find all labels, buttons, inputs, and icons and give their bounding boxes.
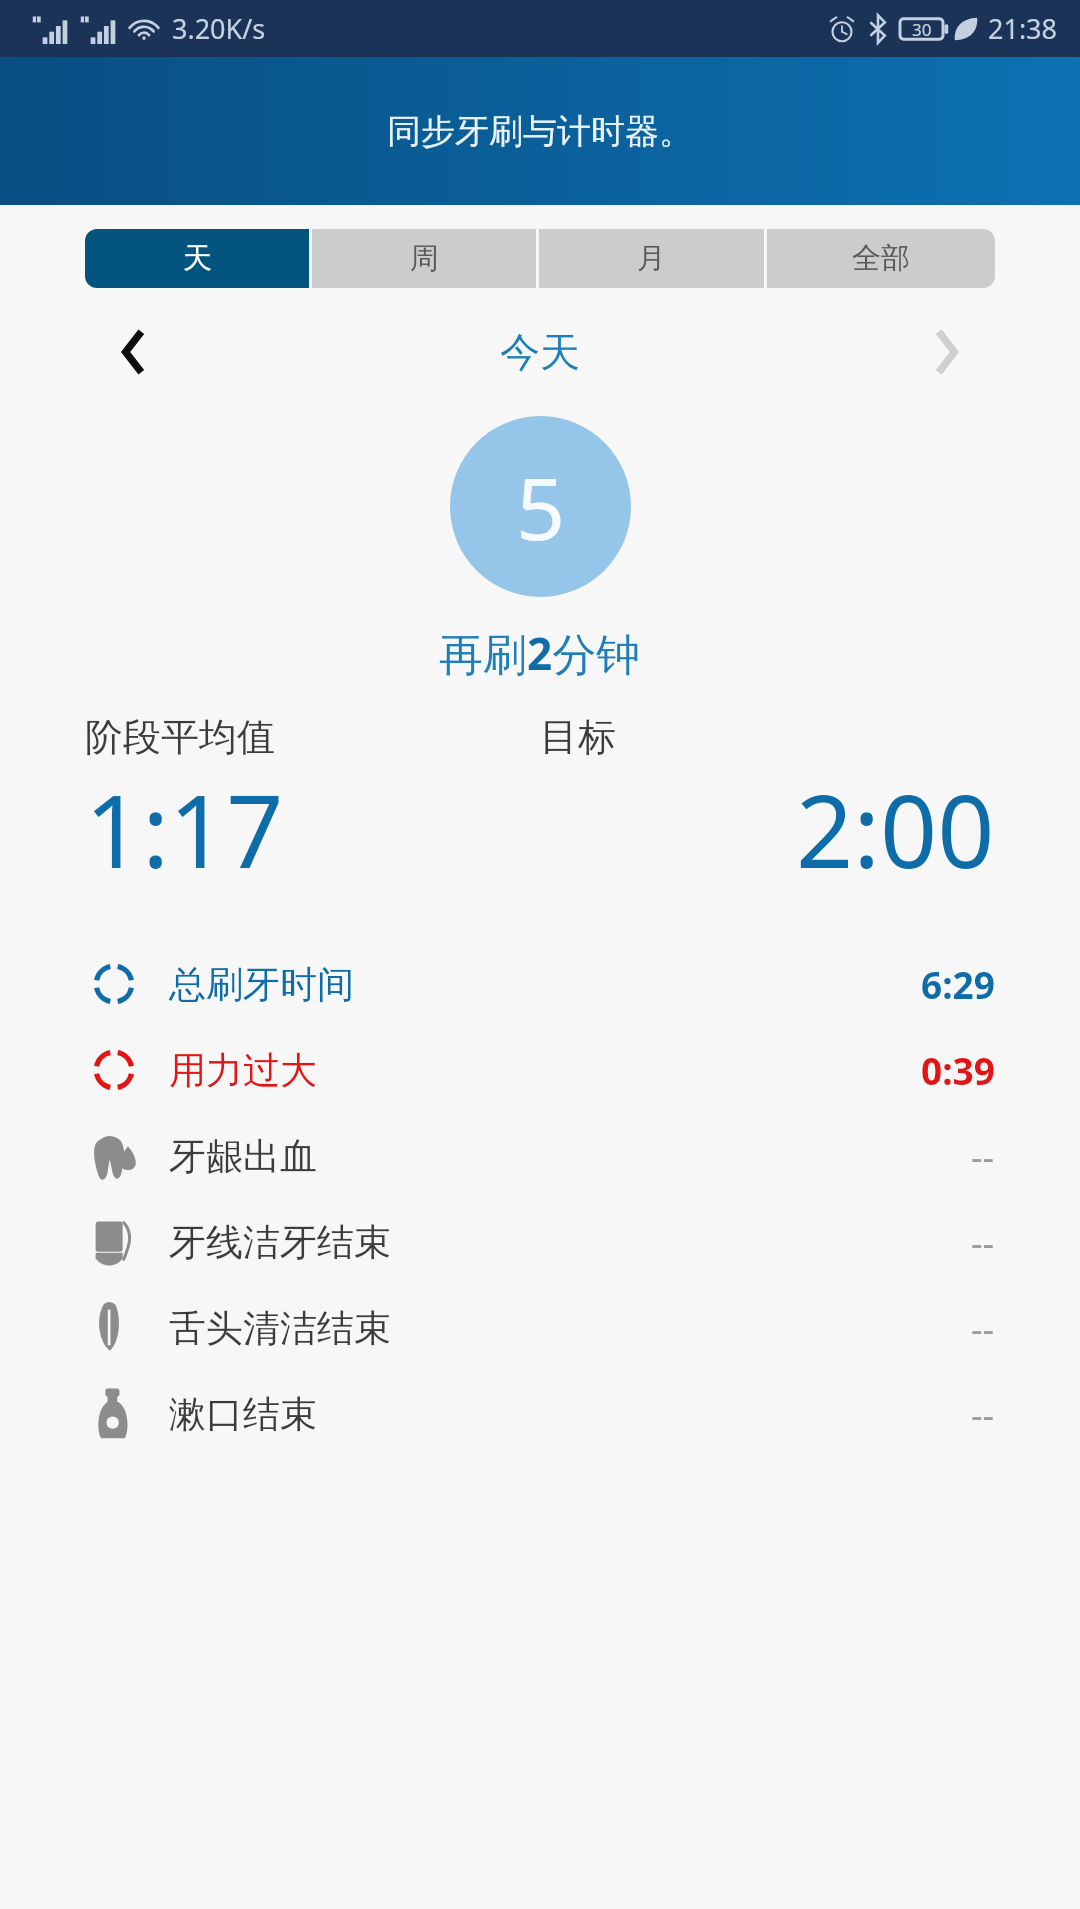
staticText: 同步牙刷与计时器。 [387,110,693,153]
staticText: -- [971,1132,995,1181]
staticText: 3.20K/s [172,10,266,47]
staticText: 牙龈出血 [169,1133,317,1180]
button[interactable]: 舌头清洁结束 [0,1285,1080,1371]
button[interactable]: 周 [312,229,536,288]
button[interactable]: 漱口结束 [0,1371,1080,1457]
staticText: 用力过大 [169,1047,317,1094]
staticText: 1:17 [85,761,284,897]
staticText: 总刷牙时间 [169,961,354,1008]
staticText: 0:39 [921,1045,995,1095]
staticText: 21:38 [988,10,1058,47]
button[interactable]: 总刷牙时间 [0,941,1080,1027]
staticText: 目标 [540,713,616,761]
staticText: 再刷2分钟 [439,623,641,683]
staticText: 舌头清洁结束 [169,1305,391,1352]
button[interactable]: 牙龈出血 [0,1113,1080,1199]
staticText: 30 [912,18,932,41]
button[interactable]: 全部 [767,229,995,288]
staticText: 天 [183,240,212,277]
staticText: -- [971,1218,995,1267]
staticText: 漱口结束 [169,1391,317,1438]
button[interactable]: Previous day [96,314,172,390]
button[interactable]: 天 [85,229,309,288]
staticText: 6:29 [921,959,995,1009]
staticText: 今天 [500,327,580,377]
staticText: 全部 [852,240,910,277]
staticText: 周 [410,240,439,277]
staticText: 阶段平均值 [85,713,275,761]
button[interactable]: 用力过大 [0,1027,1080,1113]
button[interactable]: Next day [908,314,984,390]
staticText: 牙线洁牙结束 [169,1219,391,1266]
staticText: 月 [637,240,666,277]
button[interactable]: 月 [539,229,764,288]
staticText: 5 [516,448,566,565]
button[interactable]: 牙线洁牙结束 [0,1199,1080,1285]
staticText: -- [971,1390,995,1439]
staticText: -- [971,1304,995,1353]
staticText: 2:00 [796,761,995,897]
